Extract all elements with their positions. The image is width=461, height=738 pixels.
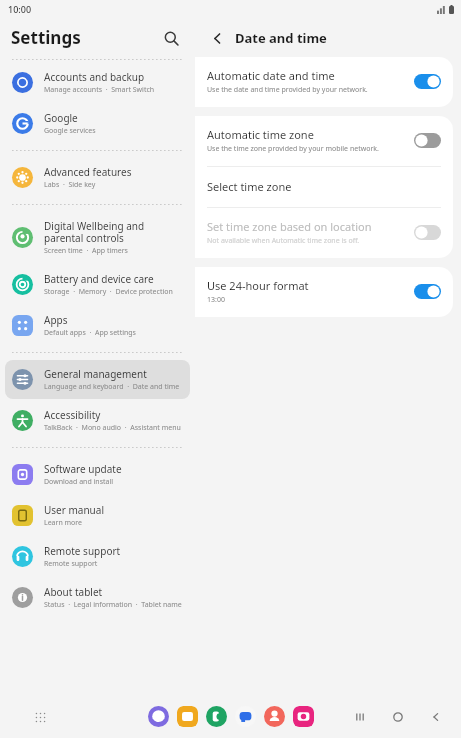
- button[interactable]: internet: [148, 706, 169, 727]
- button[interactable]: Google: [5, 104, 190, 143]
- button[interactable]: Off: [414, 225, 441, 240]
- staticText: Settings: [11, 26, 81, 49]
- button[interactable]: On: [414, 284, 441, 299]
- staticText: Use the date and time provided by your n…: [207, 85, 368, 95]
- staticText: Software update: [44, 462, 122, 476]
- staticText: Manage accounts · Smart Switch: [44, 85, 155, 95]
- button[interactable]: phone: [206, 706, 227, 727]
- staticText: Remote support: [44, 559, 98, 569]
- button[interactable]: Battery and device care: [5, 265, 190, 304]
- button[interactable]: User manual: [5, 496, 190, 535]
- button[interactable]: About tablet: [5, 578, 190, 617]
- button[interactable]: Automatic date and time: [195, 57, 453, 107]
- button[interactable]: Automatic time zone: [195, 116, 453, 166]
- button[interactable]: Accounts and backup: [5, 63, 190, 102]
- button[interactable]: Set time zone based on location: [195, 208, 453, 258]
- staticText: Download and install: [44, 477, 114, 487]
- button[interactable]: On: [414, 74, 441, 89]
- button[interactable]: Apps: [5, 306, 190, 345]
- staticText: Date and time: [235, 29, 327, 47]
- staticText: Battery and device care: [44, 272, 154, 286]
- staticText: Accessibility: [44, 408, 101, 422]
- button[interactable]: Accessibility: [5, 401, 190, 440]
- staticText: Set time zone based on location: [207, 219, 372, 234]
- button[interactable]: General management: [5, 360, 190, 399]
- staticText: Apps: [44, 313, 68, 327]
- staticText: About tablet: [44, 585, 103, 599]
- staticText: General management: [44, 367, 147, 381]
- button[interactable]: Select time zone: [195, 167, 453, 207]
- button[interactable]: Software update: [5, 455, 190, 494]
- staticText: Select time zone: [207, 179, 292, 194]
- staticText: Accounts and backup: [44, 70, 145, 84]
- button[interactable]: Recents: [349, 706, 371, 728]
- button[interactable]: Advanced features: [5, 158, 190, 197]
- staticText: Advanced features: [44, 165, 132, 179]
- staticText: Automatic time zone: [207, 127, 314, 142]
- button[interactable]: camera: [293, 706, 314, 727]
- button[interactable]: Home: [387, 706, 409, 728]
- button[interactable]: Back: [425, 706, 447, 728]
- button[interactable]: messages: [235, 706, 256, 727]
- staticText: Use 24-hour format: [207, 278, 309, 293]
- button[interactable]: Remote support: [5, 537, 190, 576]
- button[interactable]: contacts: [264, 706, 285, 727]
- staticText: Use the time zone provided by your mobil…: [207, 144, 379, 154]
- staticText: Remote support: [44, 544, 121, 558]
- staticText: Google: [44, 111, 78, 125]
- staticText: Learn more: [44, 518, 83, 528]
- staticText: Storage · Memory · Device protection: [44, 287, 173, 297]
- staticText: Default apps · App settings: [44, 328, 136, 338]
- staticText: TalkBack · Mono audio · Assistant menu: [44, 423, 181, 433]
- staticText: Automatic date and time: [207, 68, 335, 83]
- staticText: Not available when Automatic time zone i…: [207, 236, 360, 246]
- staticText: Screen time · App timers: [44, 246, 128, 256]
- button[interactable]: All apps: [28, 705, 52, 729]
- staticText: User manual: [44, 503, 104, 517]
- staticText: Digital Wellbeing and parental controls: [44, 219, 184, 245]
- button[interactable]: Search: [157, 24, 185, 52]
- staticText: Labs · Side key: [44, 180, 96, 190]
- staticText: Status · Legal information · Tablet name: [44, 600, 182, 610]
- button[interactable]: Use 24-hour format: [195, 267, 453, 317]
- staticText: 13:00: [207, 295, 225, 305]
- staticText: 10:00: [8, 3, 32, 15]
- staticText: Language and keyboard · Date and time: [44, 382, 180, 392]
- staticText: Google services: [44, 126, 96, 136]
- button[interactable]: Digital Wellbeing and parental controls: [5, 212, 190, 263]
- button[interactable]: files: [177, 706, 198, 727]
- button[interactable]: Off: [414, 133, 441, 148]
- button[interactable]: Back: [205, 26, 229, 50]
